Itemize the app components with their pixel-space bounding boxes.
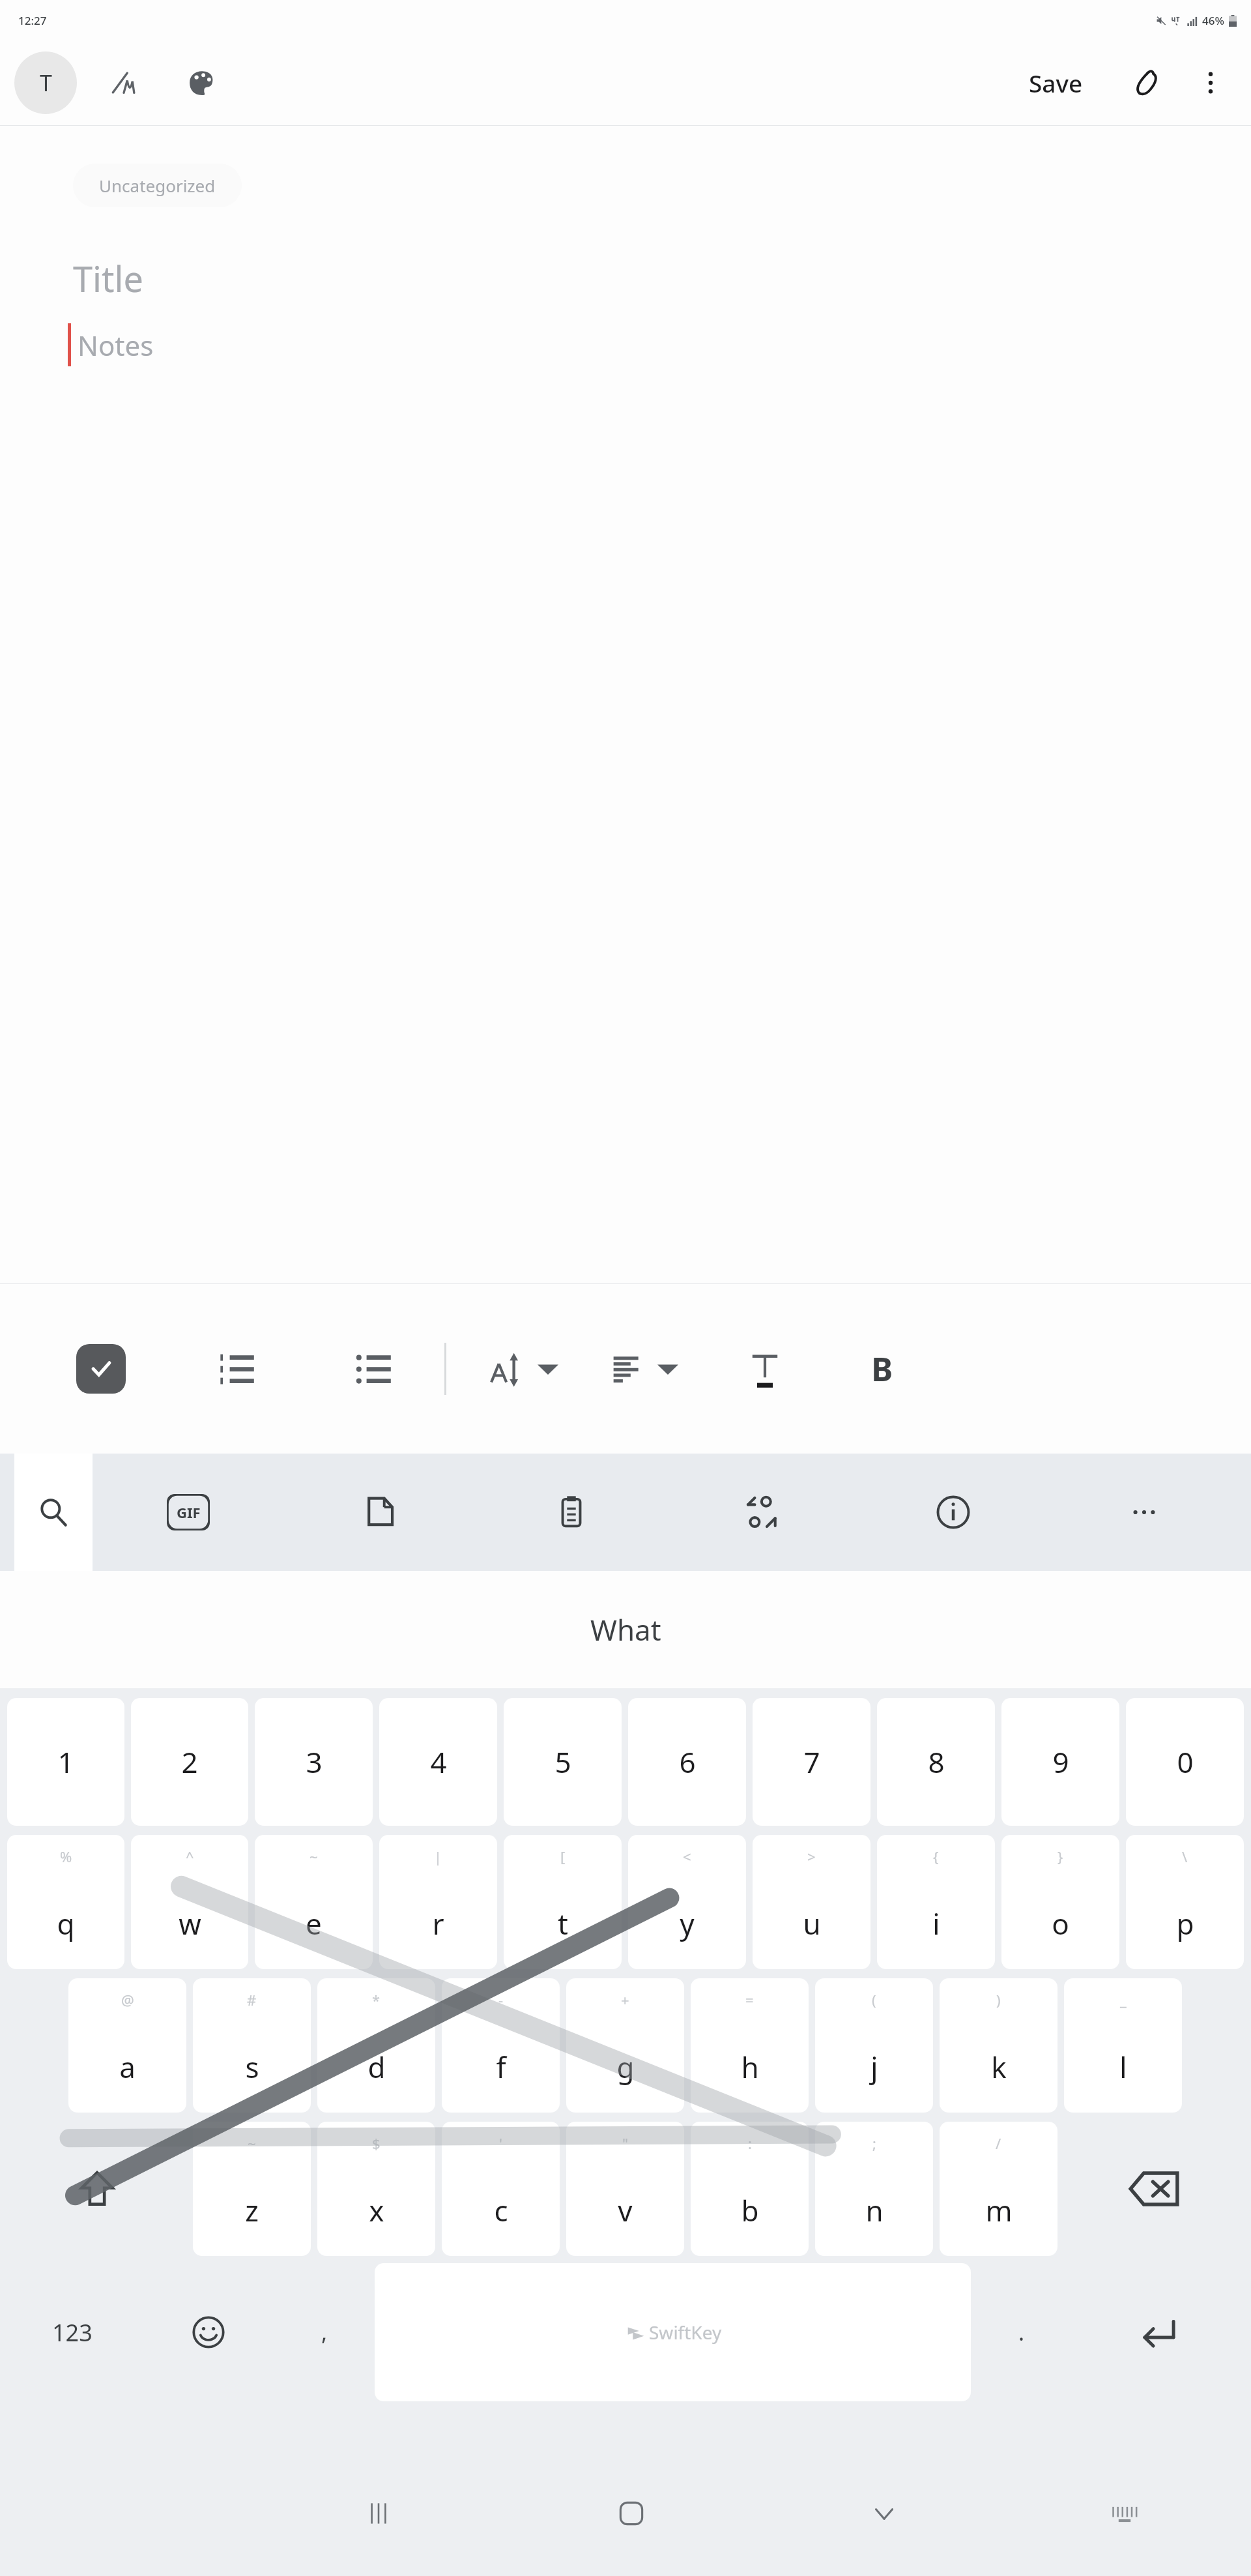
- button[interactable]: #: [193, 1978, 311, 2113]
- staticText: {: [933, 1847, 939, 1866]
- button[interactable]: More options: [1179, 51, 1242, 114]
- button[interactable]: What: [417, 1571, 834, 1688]
- button[interactable]: Space: [375, 2263, 971, 2401]
- staticText: m: [985, 2191, 1013, 2230]
- staticText: 9: [1052, 1742, 1069, 1781]
- button[interactable]: Recents: [252, 2451, 505, 2576]
- staticText: B: [871, 1347, 893, 1391]
- button[interactable]: (: [815, 1978, 933, 2113]
- button[interactable]: |: [379, 1835, 497, 1969]
- staticText: a: [119, 2047, 136, 2086]
- button[interactable]: 8: [877, 1698, 995, 1826]
- staticText: =: [745, 1990, 754, 2010]
- button[interactable]: =: [691, 1978, 809, 2113]
- button[interactable]: Uncategorized: [73, 164, 242, 207]
- button[interactable]: Palette: [171, 51, 233, 114]
- button[interactable]: 0: [1126, 1698, 1244, 1826]
- button[interactable]: 123: [4, 2261, 140, 2404]
- button[interactable]: clipboard: [476, 1454, 667, 1571]
- button[interactable]: 7: [753, 1698, 870, 1826]
- button[interactable]: translate: [667, 1454, 857, 1571]
- button[interactable]: ): [940, 1978, 1057, 2113]
- staticText: -: [498, 1990, 504, 2010]
- staticText: b: [741, 2191, 759, 2230]
- button[interactable]: Bold: [846, 1333, 918, 1405]
- button[interactable]: Underline: [729, 1333, 801, 1405]
- button[interactable]: ;: [815, 2122, 933, 2256]
- button[interactable]: ,: [276, 2261, 372, 2404]
- staticText: p: [1176, 1904, 1194, 1943]
- button[interactable]: Search: [14, 1454, 93, 1571]
- button[interactable]: Text size: [483, 1348, 564, 1390]
- button[interactable]: /: [940, 2122, 1057, 2256]
- staticText: 0: [1177, 1742, 1194, 1781]
- button[interactable]: 3: [255, 1698, 373, 1826]
- button[interactable]: Attach: [1117, 51, 1179, 114]
- staticText: #: [247, 1990, 257, 2010]
- staticText: ~: [309, 1847, 318, 1866]
- button[interactable]: Emoji: [140, 2261, 276, 2404]
- button[interactable]: Bulleted list: [339, 1333, 410, 1405]
- button[interactable]: Backspace: [1061, 2117, 1247, 2261]
- button[interactable]: Enter: [1069, 2261, 1247, 2404]
- button[interactable]: @: [68, 1978, 186, 2113]
- staticText: 8: [928, 1742, 945, 1781]
- staticText: 12:27: [18, 13, 47, 28]
- button[interactable]: Back: [758, 2451, 1011, 2576]
- button[interactable]: 4: [379, 1698, 497, 1826]
- button[interactable]: {: [877, 1835, 995, 1969]
- button[interactable]: .: [973, 2261, 1069, 2404]
- button[interactable]: 6: [628, 1698, 746, 1826]
- button[interactable]: \: [1126, 1835, 1244, 1969]
- button[interactable]: >: [753, 1835, 870, 1969]
- button[interactable]: Alignment: [605, 1350, 683, 1388]
- staticText: @: [121, 1990, 134, 2010]
- button[interactable]: 2: [131, 1698, 248, 1826]
- button[interactable]: Checklist: [65, 1333, 137, 1405]
- button[interactable]: more: [1048, 1454, 1239, 1571]
- button[interactable]: %: [7, 1835, 124, 1969]
- button[interactable]: ^: [131, 1835, 248, 1969]
- button[interactable]: +: [566, 1978, 684, 2113]
- staticText: 5: [554, 1742, 571, 1781]
- staticText: Uncategorized: [99, 174, 216, 197]
- button[interactable]: Save: [1018, 59, 1093, 107]
- button[interactable]: Home: [505, 2451, 758, 2576]
- button[interactable]: :: [691, 2122, 809, 2256]
- button[interactable]: ": [566, 2122, 684, 2256]
- staticText: T: [40, 68, 52, 98]
- button[interactable]: }: [1001, 1835, 1119, 1969]
- button[interactable]: info: [857, 1454, 1048, 1571]
- button[interactable]: Numbered list: [202, 1333, 274, 1405]
- button[interactable]: [: [504, 1835, 622, 1969]
- button[interactable]: Text mode: [14, 51, 77, 114]
- button[interactable]: 9: [1001, 1698, 1119, 1826]
- button[interactable]: ~: [193, 2122, 311, 2256]
- button[interactable]: ': [442, 2122, 560, 2256]
- staticText: v: [618, 2191, 633, 2230]
- staticText: r: [432, 1904, 444, 1943]
- button[interactable]: $: [317, 2122, 435, 2256]
- staticText: l: [1119, 2047, 1127, 2086]
- staticText: :: [748, 2133, 752, 2153]
- button[interactable]: *: [317, 1978, 435, 2113]
- button[interactable]: <: [628, 1835, 746, 1969]
- staticText: ^: [186, 1847, 194, 1866]
- staticText: $: [372, 2133, 381, 2153]
- staticText: c: [494, 2191, 508, 2230]
- button[interactable]: Shift: [4, 2117, 190, 2261]
- button[interactable]: 5: [504, 1698, 622, 1826]
- button[interactable]: -: [442, 1978, 560, 2113]
- staticText: (: [872, 1990, 876, 2010]
- button[interactable]: 1: [7, 1698, 124, 1826]
- button[interactable]: Keyboard switcher: [1011, 2451, 1238, 2576]
- button[interactable]: ~: [255, 1835, 373, 1969]
- button[interactable]: Handwriting: [93, 51, 155, 114]
- staticText: k: [991, 2047, 1007, 2086]
- button[interactable]: GIF: [93, 1454, 284, 1571]
- button[interactable]: sticker: [284, 1454, 476, 1571]
- staticText: e: [306, 1904, 322, 1943]
- button[interactable]: _: [1064, 1978, 1182, 2113]
